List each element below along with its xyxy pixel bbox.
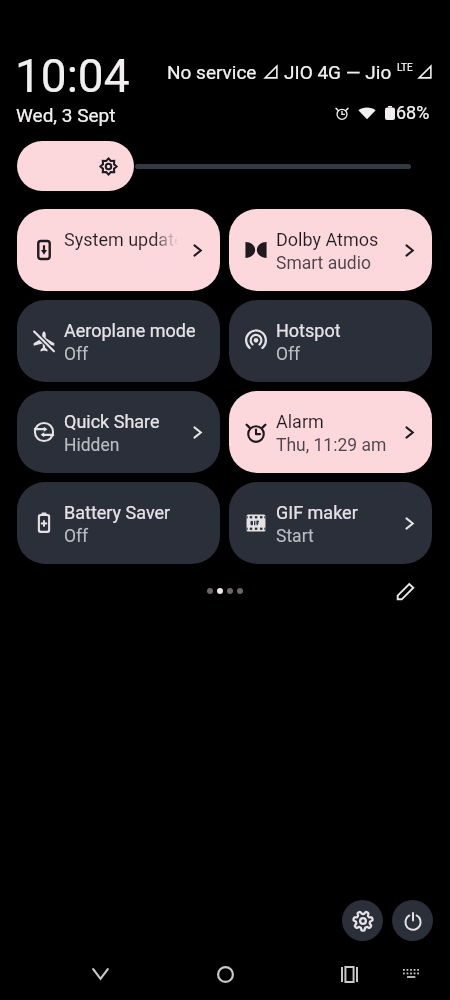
button[interactable]: Keyboard	[387, 950, 435, 998]
staticText: JIO 4G — Jio	[284, 61, 392, 83]
button[interactable]: Aeroplane mode	[17, 300, 220, 382]
staticText: Off	[276, 344, 301, 365]
staticText: Aeroplane mode	[64, 320, 196, 341]
button[interactable]: Hotspot	[229, 300, 432, 382]
staticText: No service	[167, 61, 257, 83]
button[interactable]: Dolby Atmos	[229, 209, 432, 291]
button[interactable]: Battery Saver	[17, 482, 220, 564]
staticText: Off	[64, 344, 89, 365]
staticText: Thu, 11:29 am	[276, 435, 387, 456]
staticText: Battery Saver	[64, 502, 171, 523]
staticText: System update	[64, 229, 184, 250]
staticText: 10:04	[15, 49, 130, 103]
staticText: LTE	[397, 62, 413, 74]
staticText: Hotspot	[276, 320, 341, 341]
button[interactable]: Power	[392, 900, 433, 941]
staticText: Wed, 3 Sept	[16, 104, 116, 126]
staticText: GIF maker	[276, 502, 358, 523]
staticText: 68%	[396, 102, 430, 123]
staticText: Dolby Atmos	[276, 229, 379, 250]
button[interactable]: Quick Share	[17, 391, 220, 473]
button[interactable]: Back	[76, 950, 124, 998]
staticText: Start	[276, 526, 314, 547]
button[interactable]: Home	[201, 950, 249, 998]
button[interactable]: GIF maker	[229, 482, 432, 564]
button[interactable]: Edit tiles	[391, 577, 419, 605]
staticText: Off	[64, 526, 89, 547]
staticText: Smart audio	[276, 253, 371, 274]
button[interactable]: System update	[17, 209, 220, 291]
button[interactable]: Brightness	[17, 141, 134, 191]
staticText: Alarm	[276, 411, 324, 432]
button[interactable]: Settings	[342, 900, 383, 941]
staticText: Quick Share	[64, 411, 160, 432]
button[interactable]: Recents	[325, 950, 373, 998]
button[interactable]: Alarm	[229, 391, 432, 473]
staticText: Hidden	[64, 435, 120, 456]
